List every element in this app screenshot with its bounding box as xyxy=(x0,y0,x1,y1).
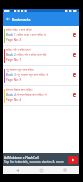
staticText: Book 4: উপন্যাস বিষয়ক রচনা সাহিত্য পা xyxy=(6,93,47,97)
button[interactable]: Recent apps xyxy=(55,166,75,174)
staticText: Page No: 3 xyxy=(6,38,22,42)
staticText: গল্প সংকলন নতুন রচনা সাহিত্য xyxy=(6,68,34,72)
staticText: Book 1: কবিতা সংগ্রহ ও রচনা কবিতা সং xyxy=(6,33,47,37)
button[interactable]: Play video xyxy=(68,156,78,164)
button[interactable]: Home xyxy=(31,166,51,174)
staticText: Page No: 7 xyxy=(6,58,22,62)
button[interactable]: Delete bookmark xyxy=(69,86,79,106)
button[interactable]: Delete bookmark xyxy=(69,46,79,66)
button[interactable]: গল্প সংকলন নতুন রচনা সাহিত্য xyxy=(3,66,79,86)
staticText: Bookmarks xyxy=(12,17,31,22)
staticText: Page No: 9 xyxy=(6,78,22,82)
button[interactable]: সাহিত্য পাঠ ও কবিতা রচনা xyxy=(3,46,79,66)
button[interactable]: Delete bookmark xyxy=(69,66,79,86)
staticText: Book 2: সাহিত্য পাঠ ও কবিতা রচনা সাহি xyxy=(6,53,47,57)
button[interactable]: Back xyxy=(7,166,27,174)
button[interactable]: উপন্যাস বিষয়ক রচনা সাহিত্য xyxy=(3,86,79,106)
staticText: উপন্যাস বিষয়ক রচনা সাহিত্য xyxy=(6,88,33,92)
button[interactable]: কবিতা সংগ্রহ ও রচনা কবিতা xyxy=(3,26,79,46)
button[interactable]: Navigate up xyxy=(3,12,12,26)
staticText: AdMobisme x FlashCall xyxy=(4,156,39,160)
staticText: কবিতা সংগ্রহ ও রচনা কবিতা xyxy=(6,28,32,32)
staticText: Book 3: গল্প সংকলন নতুন রচনা সাহিত্য পা xyxy=(6,73,49,77)
staticText: Page No: 4 xyxy=(6,98,22,102)
staticText: সাহিত্য পাঠ ও কবিতা রচনা xyxy=(6,48,31,52)
staticText: Tap for tutorials, success stories & mor… xyxy=(4,160,64,164)
button[interactable]: Delete bookmark xyxy=(69,26,79,46)
